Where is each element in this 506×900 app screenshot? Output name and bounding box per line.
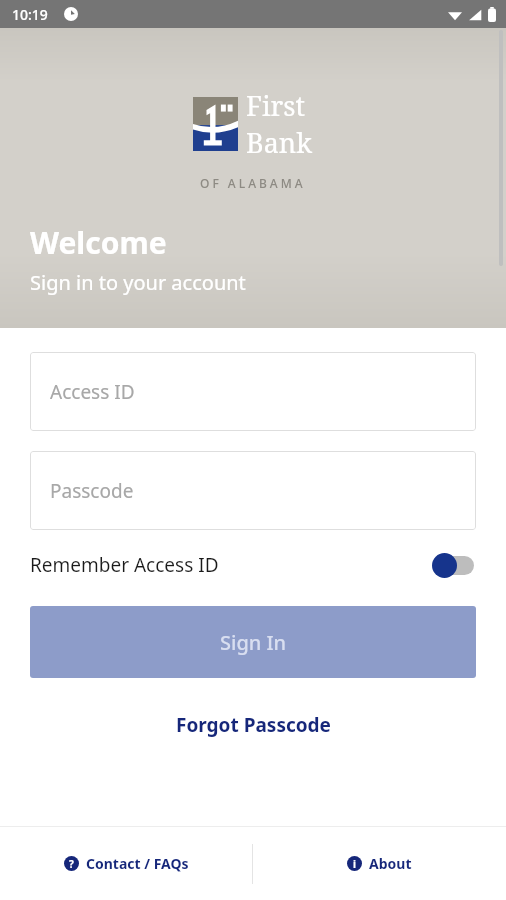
staticText: Contact / FAQs [86, 854, 189, 873]
staticText: Bank [246, 124, 313, 161]
staticText: Remember Access ID [30, 552, 219, 578]
other: Remember Access ID toggle [432, 552, 476, 578]
staticText: ? [69, 857, 74, 871]
staticText: About [369, 854, 412, 873]
button[interactable]: ? [0, 827, 252, 900]
staticText: Sign In [220, 629, 287, 656]
staticText: Access ID [50, 379, 135, 405]
button[interactable]: Passcode [30, 451, 476, 530]
button[interactable]: Remember Access ID [30, 552, 476, 578]
staticText: i [353, 857, 356, 871]
staticText: 10:19 [12, 5, 48, 24]
button[interactable]: Access ID [30, 352, 476, 431]
staticText: Welcome [30, 222, 167, 263]
staticText: First [246, 87, 305, 124]
button[interactable]: Forgot Passcode [0, 708, 506, 742]
staticText: Forgot Passcode [176, 712, 331, 738]
staticText: OF ALABAMA [200, 175, 306, 191]
staticText: Sign in to your account [30, 269, 246, 296]
staticText: Passcode [50, 478, 134, 504]
button[interactable]: Sign In [30, 606, 476, 678]
button[interactable]: i [253, 827, 506, 900]
